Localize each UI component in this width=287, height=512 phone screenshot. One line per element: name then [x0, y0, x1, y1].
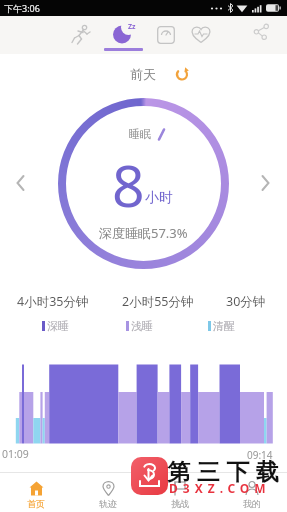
- staticText: 8: [112, 146, 145, 224]
- staticText: 前天: [130, 66, 156, 82]
- button[interactable]: 轨迹: [72, 472, 144, 512]
- button[interactable]: Zz: [106, 21, 142, 47]
- staticText: 睡眠: [129, 127, 151, 141]
- staticText: 浅睡: [131, 319, 153, 333]
- staticText: Zz: [128, 22, 136, 32]
- button[interactable]: 我的: [216, 472, 287, 512]
- staticText: 4小时35分钟: [17, 293, 89, 310]
- staticText: 第三下载: [164, 458, 282, 487]
- button[interactable]: [157, 26, 175, 44]
- staticText: 2小时55分钟: [122, 293, 194, 310]
- button[interactable]: [175, 66, 190, 81]
- button[interactable]: 首页: [0, 472, 72, 512]
- button[interactable]: [70, 24, 92, 46]
- staticText: 09:14: [247, 448, 273, 462]
- staticText: 轨迹: [99, 498, 117, 509]
- staticText: 小时: [145, 189, 173, 207]
- staticText: 01:09: [2, 447, 29, 461]
- button[interactable]: [131, 457, 168, 495]
- staticText: 首页: [27, 498, 45, 509]
- staticText: 我的: [243, 498, 261, 509]
- staticText: 清醒: [213, 319, 235, 333]
- button[interactable]: [12, 172, 28, 194]
- staticText: 30分钟: [226, 293, 266, 310]
- staticText: 下午3:06: [4, 2, 40, 14]
- button[interactable]: [258, 172, 274, 194]
- button[interactable]: [190, 25, 212, 45]
- staticText: 深睡: [47, 319, 69, 333]
- staticText: 挑战: [171, 498, 189, 509]
- button[interactable]: 前天: [118, 64, 168, 84]
- button[interactable]: [253, 23, 270, 40]
- button[interactable]: 挑战: [144, 472, 216, 512]
- staticText: D3XZ.COM: [169, 480, 271, 496]
- staticText: 深度睡眠57.3%: [99, 224, 188, 242]
